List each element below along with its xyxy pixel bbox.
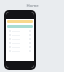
button[interactable]	[6, 12, 34, 19]
staticText: Home	[26, 3, 39, 9]
button[interactable]: Home	[0, 3, 64, 9]
button[interactable]	[6, 37, 34, 41]
button[interactable]	[6, 29, 34, 33]
button[interactable]	[6, 45, 34, 49]
button[interactable]	[6, 49, 34, 53]
button[interactable]	[6, 41, 34, 45]
button[interactable]	[7, 20, 33, 23]
button[interactable]	[6, 33, 34, 37]
button[interactable]	[7, 25, 33, 28]
